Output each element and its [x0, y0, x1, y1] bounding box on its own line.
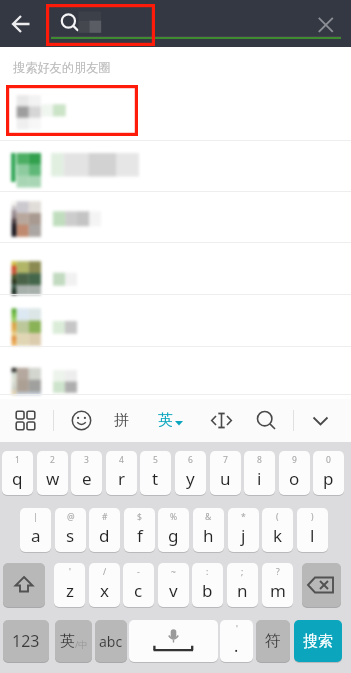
staticText: 拼: [114, 411, 129, 430]
button[interactable]: 1: [2, 451, 33, 495]
button[interactable]: 5: [140, 451, 171, 495]
button[interactable]: ': [54, 563, 85, 607]
staticText: k: [273, 524, 283, 547]
staticText: a: [31, 524, 41, 547]
staticText: x: [100, 579, 109, 602]
staticText: e: [82, 467, 92, 490]
button[interactable]: $: [124, 508, 155, 552]
button[interactable]: Search: [253, 407, 280, 434]
button[interactable]: [51, 5, 343, 37]
staticText: 3: [84, 454, 89, 466]
button[interactable]: 9: [279, 451, 310, 495]
staticText: ~: [171, 566, 176, 578]
button[interactable]: [0, 295, 351, 347]
button[interactable]: |: [20, 508, 51, 552]
button[interactable]: [0, 243, 351, 295]
button[interactable]: 英: [158, 411, 183, 430]
staticText: (: [276, 511, 279, 523]
staticText: #: [102, 511, 108, 523]
button[interactable]: -: [123, 563, 154, 607]
staticText: y: [186, 467, 195, 490]
button[interactable]: ): [297, 508, 328, 552]
button[interactable]: @: [55, 508, 86, 552]
button[interactable]: ': [220, 620, 253, 662]
button[interactable]: [0, 91, 351, 141]
staticText: $: [137, 511, 142, 523]
staticText: 7: [223, 454, 228, 466]
button[interactable]: %: [158, 508, 189, 552]
button[interactable]: [0, 346, 351, 395]
button[interactable]: &: [193, 508, 224, 552]
staticText: .: [234, 635, 239, 657]
staticText: s: [66, 524, 75, 547]
staticText: m: [270, 579, 286, 602]
staticText: w: [46, 467, 60, 490]
staticText: 5: [153, 454, 158, 466]
button[interactable]: Backspace: [302, 563, 341, 607]
staticText: @: [67, 511, 75, 523]
button[interactable]: Hide keyboard: [307, 407, 334, 434]
staticText: v: [169, 579, 178, 602]
button[interactable]: Back: [7, 10, 36, 39]
staticText: 英: [158, 411, 173, 430]
button[interactable]: ;: [227, 563, 258, 607]
staticText: n: [237, 579, 248, 602]
button[interactable]: *: [228, 508, 259, 552]
staticText: u: [220, 467, 231, 490]
staticText: /中: [75, 638, 88, 650]
button[interactable]: (: [262, 508, 293, 552]
staticText: l: [310, 524, 315, 547]
staticText: 搜索: [303, 632, 333, 651]
staticText: g: [168, 524, 179, 547]
button[interactable]: 7: [210, 451, 241, 495]
button[interactable]: [0, 192, 351, 243]
staticText: 2: [50, 454, 55, 466]
button[interactable]: Emoji: [68, 407, 95, 434]
button[interactable]: :: [192, 563, 223, 607]
staticText: ': [236, 623, 238, 635]
staticText: 4: [119, 454, 124, 466]
staticText: 0: [326, 454, 331, 466]
button[interactable]: ~: [158, 563, 189, 607]
staticText: 123: [12, 630, 40, 652]
button[interactable]: Space: [129, 620, 218, 662]
staticText: q: [12, 467, 23, 490]
button[interactable]: abc: [95, 620, 127, 662]
staticText: 搜索好友的朋友圈: [13, 60, 111, 75]
button[interactable]: Switch language: [55, 620, 92, 662]
staticText: o: [289, 467, 300, 490]
button[interactable]: Clear: [313, 12, 339, 38]
button[interactable]: 0: [313, 451, 344, 495]
staticText: 8: [257, 454, 262, 466]
staticText: f: [137, 524, 143, 547]
button[interactable]: 拼: [114, 411, 129, 430]
staticText: p: [323, 467, 334, 490]
staticText: t: [152, 467, 159, 490]
button[interactable]: Move cursor: [208, 407, 235, 434]
button[interactable]: 3: [71, 451, 102, 495]
staticText: ): [311, 511, 314, 523]
staticText: ?: [276, 566, 280, 578]
button[interactable]: 6: [175, 451, 206, 495]
staticText: 1: [15, 454, 20, 466]
staticText: 6: [188, 454, 193, 466]
button[interactable]: Keyboard layout: [12, 407, 39, 434]
staticText: d: [99, 524, 110, 547]
button[interactable]: 4: [106, 451, 137, 495]
button[interactable]: 8: [244, 451, 275, 495]
staticText: 符: [265, 631, 281, 651]
staticText: &: [205, 511, 212, 523]
button[interactable]: #: [89, 508, 120, 552]
button[interactable]: 123: [3, 620, 49, 662]
staticText: %: [170, 511, 178, 523]
button[interactable]: [0, 141, 351, 192]
button[interactable]: 符: [256, 620, 290, 662]
button[interactable]: 搜索: [294, 620, 342, 662]
button[interactable]: /: [89, 563, 120, 607]
staticText: i: [257, 467, 262, 490]
staticText: -: [137, 566, 140, 578]
button[interactable]: ?: [262, 563, 293, 607]
button[interactable]: 2: [37, 451, 68, 495]
staticText: j: [241, 524, 246, 547]
button[interactable]: Shift: [3, 563, 45, 607]
